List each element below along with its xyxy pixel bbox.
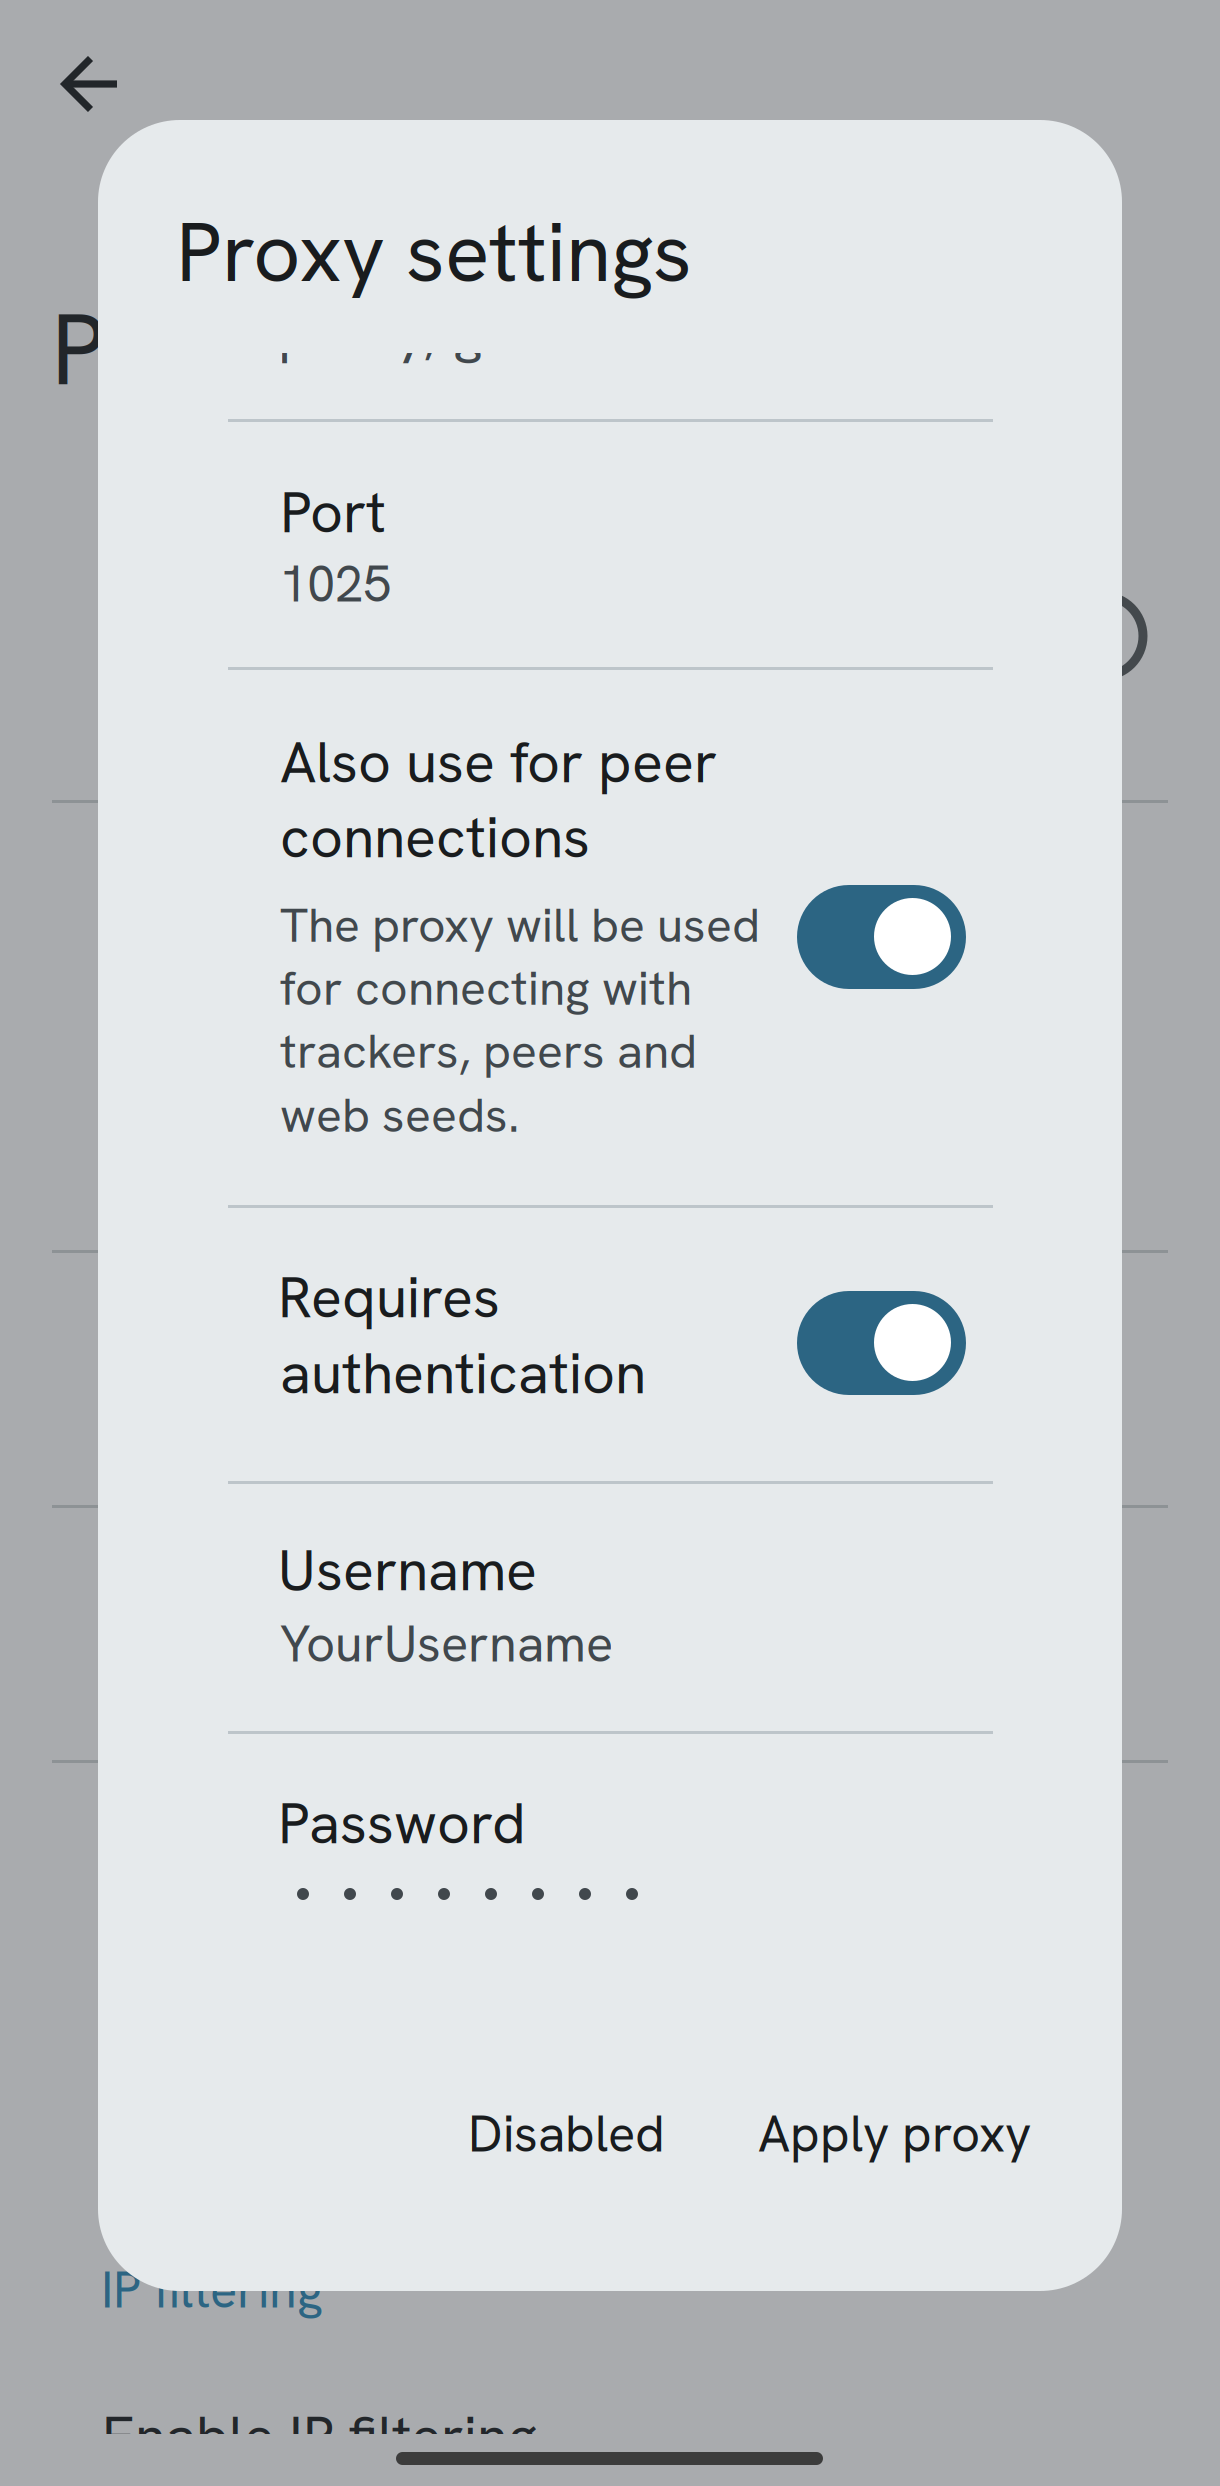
staticText: authentication: [280, 1336, 646, 1411]
button[interactable]: Apply proxy: [728, 2083, 1061, 2185]
staticText: for connecting with: [280, 957, 692, 1019]
staticText: proxy, gate: [278, 294, 563, 369]
staticText: 1025: [279, 551, 391, 617]
staticText: YourUsername: [280, 1611, 613, 1677]
staticText: Username: [278, 1533, 537, 1608]
button[interactable]: Disabled: [438, 2083, 695, 2185]
staticText: Apply proxy: [758, 2101, 1031, 2167]
staticText: Proxy settings: [176, 198, 692, 306]
staticText: Password: [278, 1786, 526, 1861]
staticText: connections: [280, 800, 590, 875]
staticText: Enable IP filtering: [102, 2400, 537, 2473]
staticText: The proxy will be used: [280, 894, 760, 956]
staticText: Proxy: [51, 285, 299, 414]
staticText: trackers, peers and: [280, 1020, 697, 1082]
staticText: Port: [280, 475, 386, 550]
staticText: IP filtering: [101, 2257, 323, 2323]
staticText: Disabled: [468, 2101, 665, 2167]
staticText: web seeds.: [280, 1084, 520, 1146]
button[interactable]: Back: [39, 32, 143, 135]
staticText: Requires: [278, 1260, 500, 1335]
staticText: Also use for peer: [280, 725, 717, 800]
